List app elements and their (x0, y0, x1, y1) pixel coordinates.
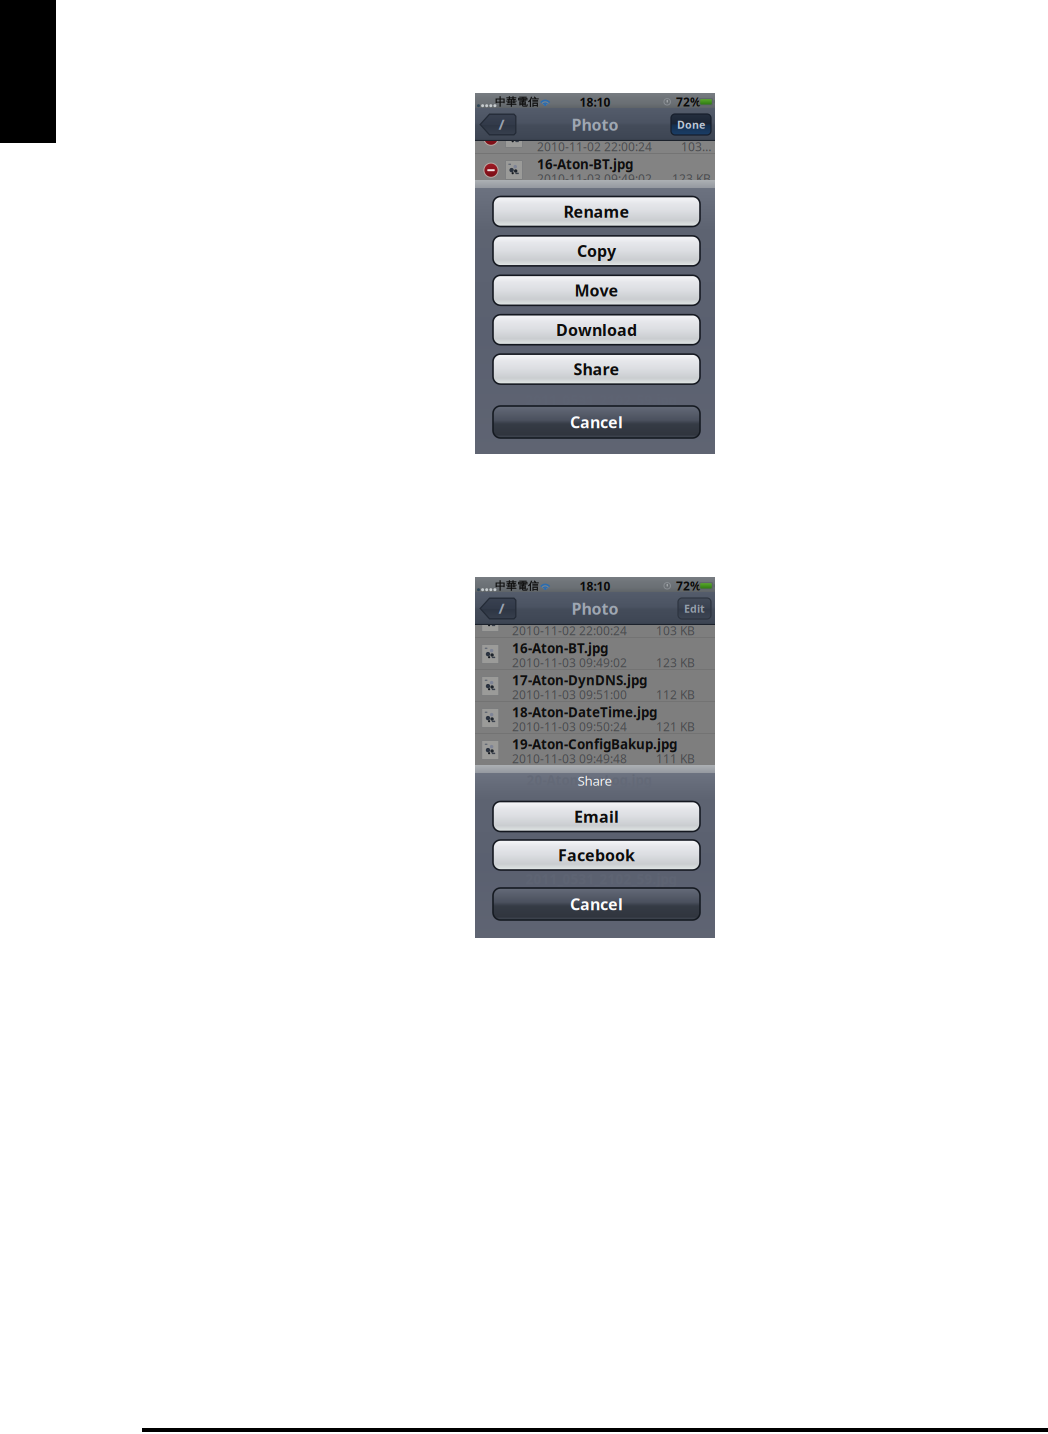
staticText: 2011_0531_2102_59.jpg (512, 831, 663, 849)
staticText: 251 KB (656, 878, 695, 894)
button[interactable]: 2011_0531_2103_59.jpg (475, 378, 715, 410)
staticText: Cancel (570, 893, 623, 915)
staticText: 248 KB (656, 846, 695, 862)
button[interactable]: Delete (483, 131, 499, 146)
staticText: 16-Aton-BT.jpg (537, 155, 633, 173)
button[interactable]: Delete (483, 195, 499, 210)
staticText: 2011_0531_2102_59.jpg (537, 347, 688, 365)
staticText: 中華電信 (495, 95, 539, 108)
staticText: 2011-05-31 21:03:59 (512, 878, 627, 894)
button[interactable]: 17-Aton-DynDNS.jpg (475, 670, 715, 702)
button[interactable]: 15-Aton-Speed.jpg (475, 606, 715, 638)
button[interactable]: Cancel (493, 888, 700, 920)
button[interactable]: 20-Aton-SysLog.jpg (475, 282, 715, 314)
staticText: 2011_0531_2102_59.jpg (525, 870, 676, 888)
button[interactable]: 19-Aton-ConfigBakup.jpg (475, 734, 715, 766)
staticText: 2010-11-03 09:48:00 (537, 298, 652, 314)
staticText: Edit (684, 601, 705, 616)
button[interactable]: 2011_0531_2102_59.jpg (475, 346, 715, 378)
button[interactable]: Download (493, 315, 700, 345)
staticText: 2010-11-03 09:50:24 (537, 234, 652, 250)
staticText: 20-Aton-SysLog.jpg (526, 771, 651, 789)
staticText: 2010-11-03 09:47:12 (537, 330, 652, 346)
button[interactable]: 19-Aton-ConfigBakup.jpg (475, 250, 715, 282)
staticText: 251 KB (672, 394, 711, 410)
staticText: 18-Aton-DateTime.jpg (512, 703, 657, 721)
button[interactable]: 16-Aton-BT.jpg (475, 154, 715, 186)
button[interactable]: 16-Aton-BT.jpg (475, 638, 715, 670)
button[interactable]: Done (671, 114, 711, 135)
staticText: 20-Aton-SysLog.jpg (512, 767, 637, 785)
staticText: 19-Aton-ConfigBakup.jpg (512, 735, 677, 753)
button[interactable]: Delete (483, 291, 499, 306)
staticText: 17-Aton-DynDNS.jpg (537, 187, 672, 205)
staticText: 111 KB (672, 266, 711, 282)
button[interactable]: Rename (493, 196, 700, 226)
staticText: 2010-11-03 09:48:00 (512, 782, 627, 798)
staticText: Photo (571, 598, 618, 619)
button[interactable]: Delete (483, 323, 499, 338)
staticText: 2011_0531_2103_59.jpg (512, 863, 663, 881)
staticText: 16-Aton-BT.jpg (512, 639, 608, 657)
staticText: Done (677, 117, 705, 132)
staticText: Share (573, 358, 619, 380)
staticText: Cancel (570, 411, 623, 433)
button[interactable]: 18-Aton-DateTime.jpg (475, 218, 715, 250)
staticText: 121 KB (672, 234, 711, 250)
staticText: 18:10 (579, 94, 610, 110)
button[interactable]: Move (493, 275, 700, 305)
staticText: Facebook (558, 844, 635, 866)
button[interactable]: Back (479, 597, 517, 620)
staticText: Email (574, 806, 619, 827)
staticText: Move (574, 280, 618, 301)
button[interactable]: Edit (678, 598, 711, 619)
button[interactable]: Cancel (493, 406, 700, 438)
staticText: 2010-11-03 09:51:00 (512, 686, 627, 702)
staticText: 2010-11-03 09:47:12 (512, 814, 627, 830)
staticText: / (498, 598, 504, 618)
staticText: 2010-11-03 09:49:48 (512, 750, 627, 766)
staticText: Share (577, 772, 612, 789)
staticText: 123 KB (656, 654, 695, 670)
staticText: 18-Aton-DateTime.jpg (537, 219, 682, 237)
staticText: Rename (563, 201, 629, 222)
button[interactable]: Back (479, 113, 517, 136)
staticText: 21-Aton-SysInfo.jpg (537, 315, 666, 333)
button[interactable]: Delete (483, 163, 499, 178)
button[interactable]: Delete (483, 259, 499, 274)
staticText: 2010-11-03 09:51:00 (537, 202, 652, 218)
staticText: 2010-11-03 09:49:02 (537, 170, 652, 186)
staticText: 112 KB (672, 202, 711, 218)
button[interactable]: 15-Aton-Speed.jpg (475, 122, 715, 154)
staticText: 15-Aton-Speed.jpg (537, 123, 656, 141)
button[interactable]: 2011_0531_2102_59.jpg (475, 830, 715, 862)
staticText: 17-Aton-DynDNS.jpg (512, 671, 647, 689)
button[interactable]: Facebook (493, 840, 700, 870)
button[interactable]: 20-Aton-SysLog.jpg (475, 766, 715, 798)
staticText: 2011_0531_2102_59.jpg (525, 391, 676, 409)
staticText: Photo (571, 114, 618, 135)
button[interactable]: Delete (483, 227, 499, 242)
staticText: 21-Aton-SysInfo.jpg (512, 799, 641, 817)
staticText: 118 KB (672, 330, 711, 346)
button[interactable]: 17-Aton-DynDNS.jpg (475, 186, 715, 218)
button[interactable]: Delete (483, 355, 499, 370)
staticText: 2011_0531_2103_59.jpg (537, 379, 688, 397)
button[interactable]: 21-Aton-SysInfo.jpg (475, 314, 715, 346)
button[interactable]: 18-Aton-DateTime.jpg (475, 702, 715, 734)
staticText: 15-Aton-Speed.jpg (512, 607, 631, 625)
staticText: 2011-05-31 21:02:59 (537, 362, 652, 378)
staticText: 18:10 (579, 578, 610, 594)
button[interactable]: 2011_0531_2103_59.jpg (475, 862, 715, 894)
staticText: 2010-11-03 09:49:02 (512, 654, 627, 670)
staticText: 2010-11-03 09:50:24 (512, 718, 627, 734)
button[interactable]: Share (493, 354, 700, 384)
staticText: 118 KB (656, 814, 695, 830)
button[interactable]: 21-Aton-SysInfo.jpg (475, 798, 715, 830)
staticText: 121 KB (656, 718, 695, 734)
button[interactable]: Email (493, 801, 700, 831)
staticText: / (498, 114, 504, 134)
button[interactable]: Copy (493, 236, 700, 266)
staticText: 105 KB (672, 298, 711, 314)
